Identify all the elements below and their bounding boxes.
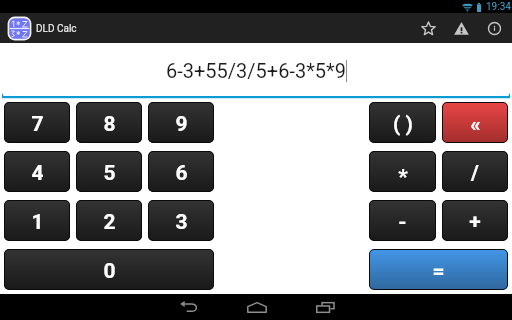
- staticText: 9: [175, 112, 188, 137]
- staticText: 8: [103, 112, 116, 137]
- staticText: /: [471, 161, 479, 186]
- staticText: 7: [31, 112, 44, 137]
- button[interactable]: Info: [478, 13, 511, 43]
- button[interactable]: «: [442, 102, 508, 143]
- button[interactable]: Warning: [445, 13, 478, 43]
- button[interactable]: 6: [148, 151, 214, 192]
- button[interactable]: *: [369, 151, 436, 192]
- button[interactable]: 7: [4, 102, 70, 143]
- staticText: -: [398, 210, 407, 235]
- staticText: 2: [103, 210, 116, 235]
- button[interactable]: Favorite: [412, 13, 445, 43]
- button[interactable]: 9: [148, 102, 214, 143]
- staticText: ( ): [393, 112, 413, 137]
- button[interactable]: Back: [178, 294, 200, 320]
- button[interactable]: 4: [4, 151, 70, 192]
- button[interactable]: Home: [246, 294, 268, 320]
- staticText: 5: [103, 161, 116, 186]
- staticText: 19:34: [486, 1, 511, 13]
- staticText: 0: [103, 259, 116, 284]
- button[interactable]: 0: [4, 249, 214, 290]
- button[interactable]: 3: [148, 200, 214, 241]
- staticText: +: [469, 210, 481, 235]
- button[interactable]: ( ): [369, 102, 436, 143]
- button[interactable]: 5: [76, 151, 142, 192]
- staticText: «: [470, 112, 481, 137]
- staticText: *: [398, 165, 408, 190]
- staticText: DLD Calc: [36, 23, 77, 35]
- staticText: 1: [31, 210, 44, 235]
- button[interactable]: =: [369, 249, 508, 290]
- button[interactable]: Recents: [314, 294, 336, 320]
- staticText: 4: [31, 161, 44, 186]
- button[interactable]: -: [369, 200, 436, 241]
- button[interactable]: /: [442, 151, 508, 192]
- button[interactable]: 2: [76, 200, 142, 241]
- button[interactable]: 8: [76, 102, 142, 143]
- staticText: 6-3+55/3/5+6-3*5*9: [166, 59, 346, 82]
- staticText: =: [432, 259, 445, 284]
- button[interactable]: +: [442, 200, 508, 241]
- staticText: 6: [175, 161, 188, 186]
- staticText: 3: [175, 210, 188, 235]
- button[interactable]: 1: [4, 200, 70, 241]
